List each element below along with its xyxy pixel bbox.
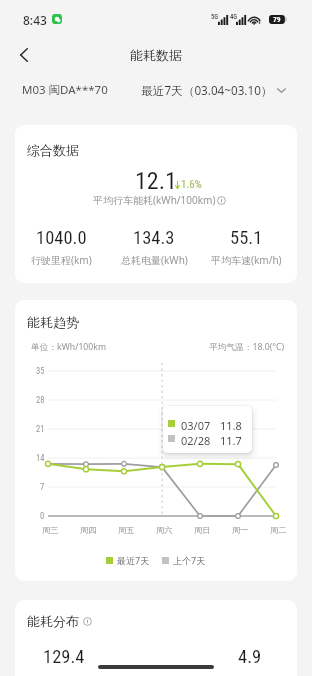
staticText: 1040.0: [36, 227, 87, 249]
staticText: 周五: [118, 525, 135, 535]
staticText: 4.9: [238, 646, 262, 668]
staticText: M03 闽DA***70: [22, 82, 108, 98]
staticText: 能耗分布: [27, 613, 79, 629]
staticText: 周四: [80, 525, 97, 535]
staticText: 11.8: [220, 418, 242, 433]
staticText: 上个7天: [173, 554, 206, 566]
staticText: 5G: [211, 13, 219, 21]
button[interactable]: Back: [7, 36, 41, 74]
staticText: 0: [40, 511, 45, 521]
staticText: 03/07: [181, 418, 211, 433]
staticText: 最近7天（03.04~03.10）: [141, 82, 273, 98]
staticText: 单位：kWh/100km: [31, 341, 107, 353]
staticText: 周日: [194, 525, 211, 535]
staticText: 行驶里程(km): [31, 253, 92, 267]
staticText: 最近7天: [117, 554, 150, 566]
staticText: 11.7: [220, 433, 242, 448]
staticText: 平均车速(km/h): [211, 253, 282, 267]
staticText: 21: [36, 424, 45, 434]
staticText: 35: [36, 366, 45, 376]
staticText: 4G: [230, 13, 238, 21]
button[interactable]: M03 闽DA***70: [18, 77, 112, 103]
staticText: 周一: [232, 525, 249, 535]
staticText: 平均行车能耗(kWh/100km): [93, 193, 216, 207]
staticText: 14: [36, 453, 45, 463]
staticText: 129.4: [43, 646, 85, 668]
staticText: 能耗趋势: [27, 314, 79, 330]
staticText: 周三: [42, 525, 59, 535]
staticText: 28: [36, 395, 45, 405]
staticText: 7: [40, 482, 45, 492]
staticText: 02/28: [181, 433, 211, 448]
staticText: 8:43: [23, 12, 47, 28]
staticText: 周二: [270, 525, 287, 535]
staticText: 综合数据: [27, 142, 79, 158]
staticText: 12.1: [135, 167, 177, 195]
staticText: 周六: [156, 525, 173, 535]
button[interactable]: 最近7天（03.04~03.10）: [137, 77, 290, 103]
staticText: 55.1: [230, 227, 263, 249]
staticText: 79: [273, 15, 281, 24]
staticText: 总耗电量(kWh): [121, 253, 188, 267]
staticText: 134.3: [133, 227, 175, 249]
staticText: 能耗数据: [130, 47, 182, 63]
staticText: 1.6%: [181, 178, 202, 191]
staticText: 平均气温：18.0(°C): [209, 341, 285, 353]
